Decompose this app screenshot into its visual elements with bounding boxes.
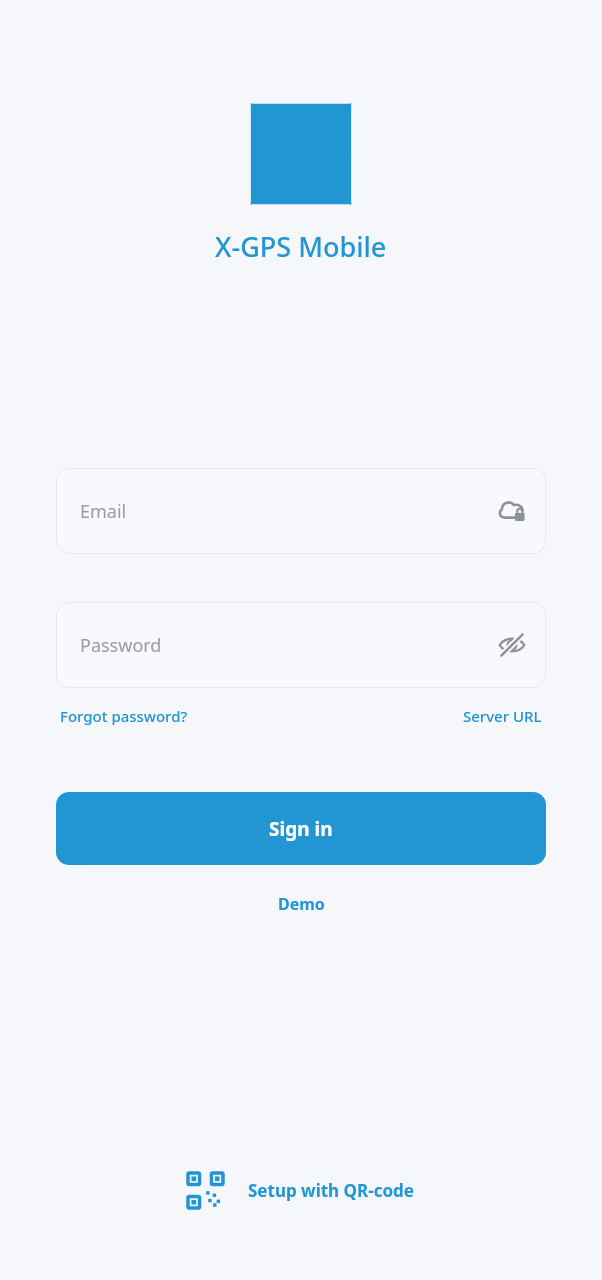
button[interactable]: Setup with QR-code (174, 1163, 428, 1218)
button[interactable]: Email (56, 468, 546, 554)
staticText: Forgot password? (60, 706, 188, 726)
staticText: Setup with QR-code (248, 1179, 414, 1202)
button[interactable]: Server connection (495, 494, 529, 528)
staticText: Email (80, 499, 495, 524)
staticText: Sign in (269, 816, 333, 842)
staticText: X-GPS Mobile (215, 228, 387, 265)
button[interactable]: Password (56, 602, 546, 688)
staticText: Demo (278, 893, 325, 915)
button[interactable]: Server URL (459, 700, 546, 732)
button[interactable]: Sign in (56, 792, 546, 865)
button[interactable]: Show password (495, 628, 529, 662)
staticText: Server URL (463, 706, 542, 726)
button[interactable]: Demo (262, 885, 341, 923)
button[interactable]: Forgot password? (56, 700, 192, 732)
staticText: Password (80, 633, 495, 658)
